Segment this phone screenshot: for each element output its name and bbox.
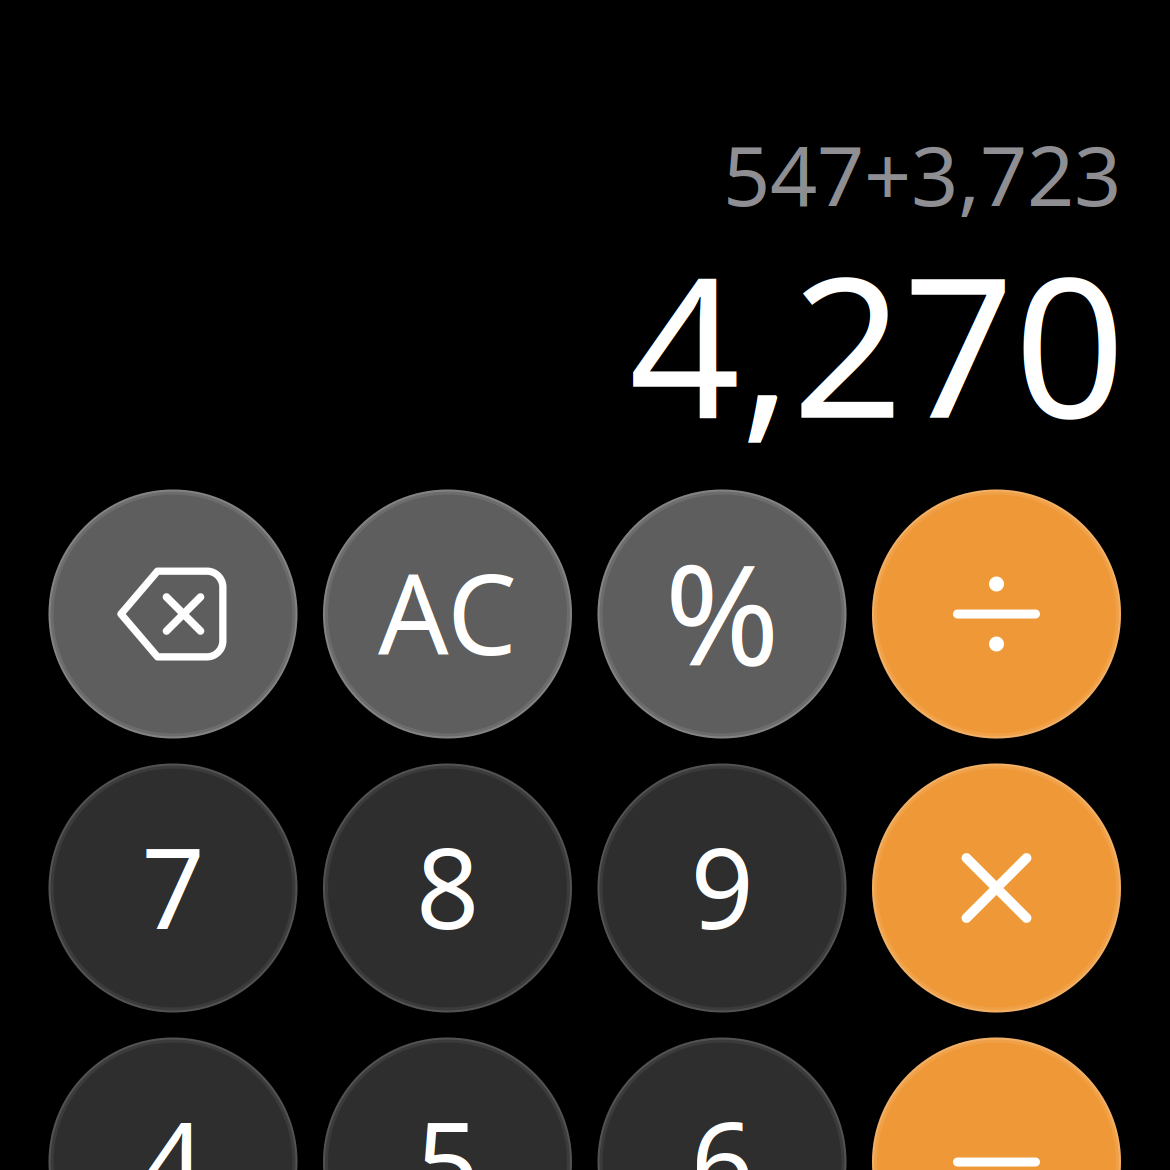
staticText: 4 bbox=[141, 1086, 204, 1170]
button[interactable]: Subtract bbox=[872, 1037, 1121, 1170]
button[interactable]: 9 bbox=[597, 763, 846, 1012]
button[interactable]: 8 bbox=[323, 763, 572, 1012]
staticText: 547+3,723 bbox=[723, 119, 1121, 229]
button[interactable]: Divide bbox=[872, 489, 1121, 738]
staticText: 4,270 bbox=[629, 213, 1125, 471]
staticText: 6 bbox=[690, 1086, 753, 1170]
staticText: % bbox=[664, 520, 779, 704]
button[interactable]: 5 bbox=[323, 1037, 572, 1170]
button[interactable]: 7 bbox=[48, 763, 297, 1012]
button[interactable]: 6 bbox=[597, 1037, 846, 1170]
button[interactable]: Delete bbox=[48, 489, 297, 738]
staticText: 5 bbox=[416, 1086, 479, 1170]
button[interactable]: Multiply bbox=[872, 763, 1121, 1012]
button[interactable]: Percent bbox=[597, 489, 846, 738]
staticText: 8 bbox=[416, 812, 479, 959]
staticText: AC bbox=[378, 538, 517, 685]
staticText: 9 bbox=[690, 812, 753, 959]
button[interactable]: All Clear bbox=[323, 489, 572, 738]
staticText: 7 bbox=[141, 812, 204, 959]
button[interactable]: 4 bbox=[48, 1037, 297, 1170]
